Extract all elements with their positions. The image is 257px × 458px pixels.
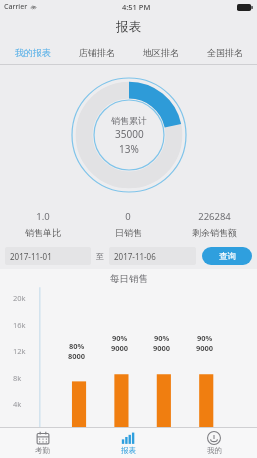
staticText: Carrier xyxy=(4,2,28,12)
staticText: 地区排名 xyxy=(143,47,179,58)
staticText: 销售单比 xyxy=(25,227,61,238)
staticText: 1.0 xyxy=(36,210,50,223)
staticText: 4k xyxy=(13,399,22,409)
button[interactable]: 我的 xyxy=(171,428,257,458)
staticText: 每日销售 xyxy=(110,273,148,285)
staticText: 店铺排名 xyxy=(79,47,115,58)
button[interactable]: 店铺排名 xyxy=(65,40,129,64)
staticText: 9000 xyxy=(196,343,214,353)
staticText: 90% xyxy=(154,333,170,343)
staticText: 考勤 xyxy=(35,446,50,455)
staticText: 2017-11-06 xyxy=(114,251,156,262)
staticText: 销售累计 xyxy=(111,115,147,126)
button[interactable]: 0 xyxy=(85,205,171,243)
staticText: 12k xyxy=(13,346,26,356)
staticText: 我的报表 xyxy=(15,47,51,58)
staticText: 查询 xyxy=(219,251,236,262)
staticText: 9000 xyxy=(153,343,171,353)
staticText: 全国排名 xyxy=(207,47,243,58)
staticText: 16k xyxy=(13,320,26,330)
staticText: 226284 xyxy=(198,210,231,223)
staticText: 4:51 PM xyxy=(122,2,151,12)
staticText: 80% xyxy=(69,341,85,351)
staticText: 13% xyxy=(119,142,139,156)
button[interactable]: 2017-11-06 xyxy=(109,247,196,265)
staticText: 90% xyxy=(112,333,128,343)
button[interactable]: 考勤 xyxy=(0,428,85,458)
staticText: 20k xyxy=(13,293,26,303)
staticText: 0 xyxy=(125,210,131,223)
button[interactable]: 查询 xyxy=(202,247,252,265)
staticText: 9000 xyxy=(111,343,129,353)
button[interactable]: 我的报表 xyxy=(0,40,65,64)
staticText: 8000 xyxy=(68,351,86,361)
staticText: 至 xyxy=(96,251,104,261)
button[interactable]: 1.0 xyxy=(0,205,85,243)
staticText: 剩余销售额 xyxy=(192,227,237,238)
staticText: 2017-11-01 xyxy=(10,251,52,262)
staticText: 报表 xyxy=(116,19,141,35)
staticText: 8k xyxy=(13,373,22,383)
button[interactable]: 226284 xyxy=(171,205,257,243)
staticText: 我的 xyxy=(207,446,222,455)
button[interactable]: 2017-11-01 xyxy=(5,247,91,265)
button[interactable]: 报表 xyxy=(85,428,171,458)
button[interactable]: 地区排名 xyxy=(129,40,193,64)
staticText: 报表 xyxy=(121,446,136,455)
button[interactable]: 全国排名 xyxy=(193,40,257,64)
staticText: 35000 xyxy=(115,127,144,141)
staticText: 日销售 xyxy=(115,227,142,238)
staticText: 90% xyxy=(197,333,213,343)
